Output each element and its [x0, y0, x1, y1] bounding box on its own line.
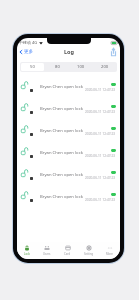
staticText: Lock	[24, 252, 30, 256]
staticText: 200	[101, 64, 109, 70]
button[interactable]: Bryan Chen open lock	[17, 186, 120, 208]
button[interactable]: Users	[37, 242, 57, 259]
staticText: Bryan Chen open lock	[40, 194, 85, 200]
button[interactable]: Lock	[17, 242, 37, 259]
staticText: 2020-06-11 12:47:23	[85, 88, 116, 92]
staticText: Bryan Chen open lock	[40, 150, 85, 156]
button[interactable]: 80	[45, 62, 69, 72]
staticText: 2020-06-11 12:47:23	[85, 132, 116, 136]
button[interactable]: 更多	[17, 49, 37, 55]
staticText: 2020-06-11 12:47:23	[85, 198, 116, 202]
button[interactable]: 200	[93, 62, 117, 72]
staticText: Bryan Chen open lock	[40, 172, 85, 178]
staticText: Card	[64, 252, 71, 256]
button[interactable]: Setting	[78, 242, 99, 259]
button[interactable]: Share	[109, 47, 118, 56]
staticText: 更多	[24, 49, 34, 55]
button[interactable]: More	[99, 242, 120, 259]
staticText: 2020-06-11 12:47:23	[85, 154, 116, 158]
button[interactable]: Bryan Chen open lock	[17, 164, 120, 186]
staticText: Log	[64, 48, 74, 55]
staticText: 100	[77, 64, 85, 70]
staticText: Bryan Chen open lock	[40, 106, 85, 112]
button[interactable]: 50	[20, 62, 45, 72]
staticText: 50	[30, 64, 35, 70]
staticText: Bryan Chen open lock	[40, 84, 85, 90]
staticText: 2020-06-11 12:47:23	[85, 110, 116, 114]
staticText: 80	[55, 64, 60, 70]
button[interactable]: Bryan Chen open lock	[17, 76, 120, 98]
staticText: 中移动 4G	[19, 40, 38, 45]
staticText: Setting	[84, 252, 94, 256]
staticText: 2020-06-11 12:47:23	[85, 176, 116, 180]
staticText: Bryan Chen open lock	[40, 128, 85, 134]
button[interactable]: Bryan Chen open lock	[17, 142, 120, 164]
button[interactable]: 100	[69, 62, 93, 72]
button[interactable]: Bryan Chen open lock	[17, 120, 120, 142]
button[interactable]: Bryan Chen open lock	[17, 98, 120, 120]
button[interactable]: Card	[57, 242, 78, 259]
staticText: More	[106, 252, 113, 256]
staticText: Users	[43, 252, 51, 256]
